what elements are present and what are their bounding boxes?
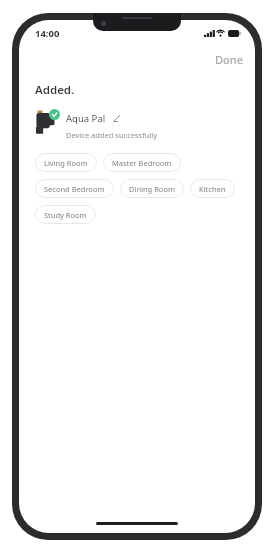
- staticText: Kitchen: [199, 184, 226, 194]
- staticText: Device added successfully: [66, 130, 158, 140]
- button[interactable]: Second Bedroom: [35, 179, 114, 198]
- button[interactable]: Study Room: [35, 205, 96, 224]
- button[interactable]: Aqua Pal: [19, 109, 255, 140]
- button[interactable]: Done: [203, 49, 255, 70]
- button[interactable]: Rename device: [111, 113, 122, 124]
- staticText: Master Bedroom: [112, 158, 172, 168]
- staticText: Living Room: [44, 158, 88, 168]
- staticText: Study Room: [44, 210, 87, 220]
- staticText: 14:00: [35, 27, 60, 40]
- button[interactable]: Master Bedroom: [103, 153, 181, 172]
- staticText: Dining Room: [129, 184, 175, 194]
- staticText: Done: [215, 52, 243, 67]
- button[interactable]: Kitchen: [190, 179, 235, 198]
- button[interactable]: Dining Room: [120, 179, 184, 198]
- staticText: Second Bedroom: [44, 184, 105, 194]
- button[interactable]: Living Room: [35, 153, 97, 172]
- staticText: Aqua Pal: [66, 112, 106, 125]
- staticText: Added.: [35, 82, 75, 98]
